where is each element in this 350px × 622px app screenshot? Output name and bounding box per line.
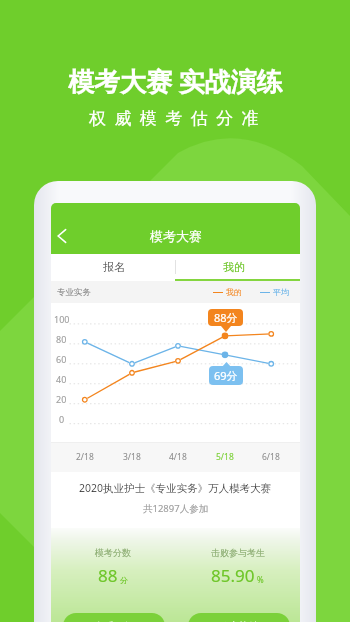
staticText: 0 xyxy=(59,413,65,425)
staticText: 共12897人参加 xyxy=(143,502,209,515)
staticText: 权 威 模 考 估 分 准 xyxy=(89,106,261,129)
staticText: % xyxy=(257,574,264,585)
staticText: 88 xyxy=(98,564,118,587)
staticText: 60 xyxy=(56,353,67,365)
staticText: 专业实务 xyxy=(57,287,91,298)
staticText: 2020执业护士《专业实务》万人模考大赛 xyxy=(79,481,272,495)
button[interactable]: 我的 xyxy=(175,254,300,281)
button[interactable]: 查看解析 xyxy=(63,613,165,622)
staticText: 击败参与考生 xyxy=(211,547,265,558)
staticText: 80 xyxy=(56,333,67,345)
staticText: 88分 xyxy=(214,310,238,325)
staticText: 20 xyxy=(56,393,67,405)
staticText: 100 xyxy=(54,313,70,325)
staticText: 4/18 xyxy=(169,451,187,463)
staticText: 我的 xyxy=(226,287,242,297)
staticText: 3/18 xyxy=(123,451,141,463)
button[interactable]: 报名 xyxy=(51,254,175,281)
staticText: 查看解析 xyxy=(94,620,134,622)
staticText: 69分 xyxy=(214,368,238,383)
staticText: 分享战绩 xyxy=(219,620,259,622)
button[interactable]: Back xyxy=(51,223,75,249)
staticText: 模考分数 xyxy=(95,547,131,558)
staticText: 6/18 xyxy=(262,451,280,463)
button[interactable]: 分享战绩 xyxy=(188,613,290,622)
staticText: 平均 xyxy=(273,287,289,297)
staticText: 85.90 xyxy=(211,564,255,587)
staticText: 2/18 xyxy=(76,451,94,463)
staticText: 分 xyxy=(120,575,128,585)
staticText: 模考大赛 xyxy=(150,228,202,244)
staticText: 我的 xyxy=(223,260,245,274)
staticText: 报名 xyxy=(103,260,125,274)
staticText: 模考大赛 实战演练 xyxy=(68,63,283,99)
staticText: 5/18 xyxy=(216,451,234,463)
staticText: 40 xyxy=(56,373,67,385)
